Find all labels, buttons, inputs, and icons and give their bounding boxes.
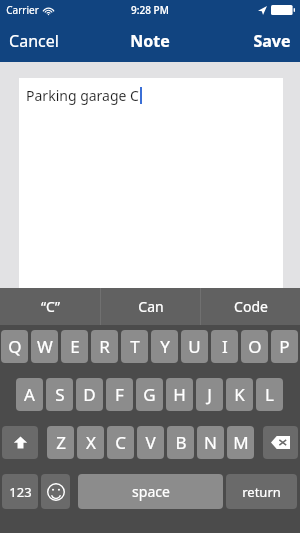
button[interactable]: V [137, 426, 164, 459]
staticText: N [204, 431, 217, 454]
staticText: I [222, 335, 228, 358]
button[interactable]: Q [1, 330, 28, 363]
staticText: O [248, 335, 262, 358]
staticText: space [132, 482, 170, 501]
button[interactable]: Parking garage C [19, 78, 283, 288]
staticText: C [115, 431, 126, 454]
staticText: B [175, 431, 187, 454]
staticText: Parking garage C [26, 86, 139, 105]
staticText: Q [8, 335, 22, 358]
button[interactable]: A [16, 378, 43, 411]
staticText: W [37, 335, 53, 358]
staticText: “C” [41, 297, 60, 316]
staticText: E [70, 335, 80, 358]
button[interactable]: O [241, 330, 268, 363]
button[interactable]: L [256, 378, 283, 411]
staticText: X [86, 431, 96, 454]
staticText: G [143, 383, 156, 406]
button[interactable]: K [226, 378, 253, 411]
staticText: K [234, 383, 245, 406]
staticText: U [188, 335, 201, 358]
button[interactable]: M [227, 426, 254, 459]
button[interactable]: “C” [0, 288, 100, 325]
staticText: F [115, 383, 124, 406]
button[interactable]: space [78, 474, 223, 509]
staticText: H [173, 383, 186, 406]
button[interactable]: X [77, 426, 104, 459]
button[interactable]: return [226, 474, 297, 509]
button[interactable]: R [91, 330, 118, 363]
button[interactable]: Y [151, 330, 178, 363]
button[interactable]: Z [47, 426, 74, 459]
staticText: V [145, 431, 156, 454]
button[interactable]: E [61, 330, 88, 363]
staticText: Code [234, 297, 268, 316]
staticText: Carrier [6, 3, 39, 17]
button[interactable]: Cancel [0, 24, 68, 58]
button[interactable]: D [76, 378, 103, 411]
button[interactable]: Can [101, 288, 200, 325]
staticText: 123 [9, 483, 32, 501]
button[interactable]: Emoji [41, 474, 70, 509]
staticText: Can [138, 297, 164, 316]
button[interactable]: C [107, 426, 134, 459]
button[interactable]: I [211, 330, 238, 363]
staticText: P [279, 335, 290, 358]
staticText: A [24, 383, 35, 406]
staticText: Y [160, 335, 170, 358]
button[interactable]: Code [201, 288, 300, 325]
staticText: Save [253, 30, 291, 52]
button[interactable]: W [31, 330, 58, 363]
button[interactable]: P [271, 330, 298, 363]
staticText: Note [130, 30, 170, 52]
staticText: S [55, 383, 65, 406]
staticText: T [130, 335, 140, 358]
button[interactable]: S [46, 378, 73, 411]
button[interactable]: J [196, 378, 223, 411]
button[interactable]: Save [244, 24, 300, 58]
staticText: Cancel [9, 30, 59, 52]
button[interactable]: H [166, 378, 193, 411]
button[interactable]: N [197, 426, 224, 459]
staticText: 9:28 PM [131, 3, 169, 17]
staticText: Z [56, 431, 66, 454]
button[interactable]: F [106, 378, 133, 411]
staticText: L [265, 383, 274, 406]
button[interactable]: 123 [2, 474, 38, 509]
button[interactable]: Backspace [263, 426, 298, 459]
staticText: M [233, 431, 249, 454]
staticText: R [99, 335, 110, 358]
staticText: return [242, 483, 281, 501]
button[interactable]: G [136, 378, 163, 411]
button[interactable]: B [167, 426, 194, 459]
staticText: J [207, 383, 212, 406]
staticText: D [83, 383, 96, 406]
button[interactable]: Shift [2, 426, 38, 459]
button[interactable]: T [121, 330, 148, 363]
button[interactable]: U [181, 330, 208, 363]
